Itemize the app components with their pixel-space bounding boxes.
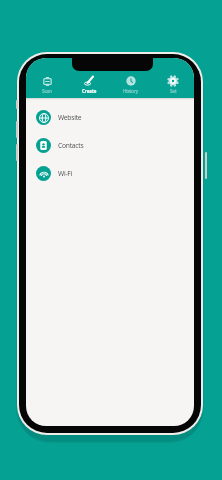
staticText: Website [58,113,82,122]
button[interactable]: Create [68,58,110,98]
button[interactable]: Wi-Fi [26,159,194,187]
button[interactable]: Website [26,103,194,131]
button[interactable]: Set [152,58,194,98]
staticText: Contacts [58,141,84,150]
staticText: Set [170,88,177,94]
button[interactable]: Contacts [26,131,194,159]
button[interactable]: Scan [26,58,68,98]
staticText: Scan [42,88,52,94]
staticText: Create [82,88,97,94]
staticText: History [123,88,139,94]
button[interactable]: History [110,58,152,98]
staticText: Wi-Fi [58,169,73,178]
